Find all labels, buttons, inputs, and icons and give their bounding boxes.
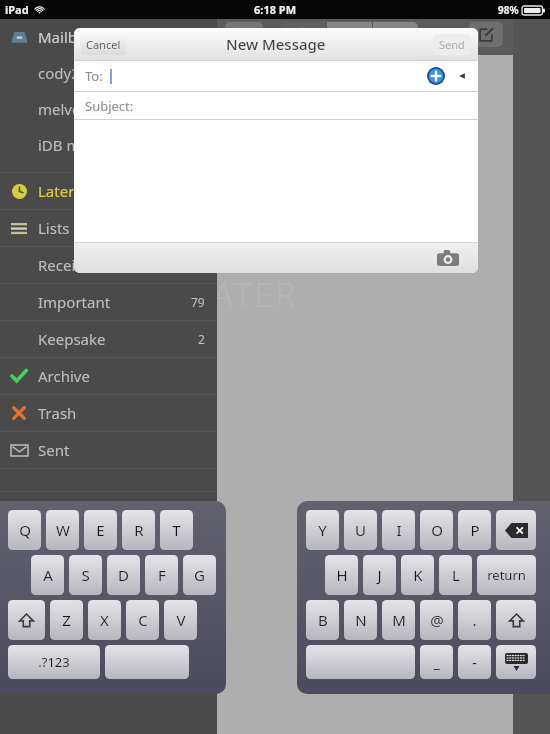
staticText: Sent (38, 440, 70, 460)
button[interactable]: Inbox (327, 22, 372, 47)
button[interactable]: L (439, 555, 472, 595)
staticText: Send (439, 37, 465, 52)
button[interactable]: return (477, 555, 536, 595)
button[interactable]: Q (8, 510, 41, 550)
button[interactable]: Shift (8, 600, 45, 640)
staticText: To: (85, 67, 103, 85)
button[interactable]: Cancel (81, 34, 126, 55)
button[interactable]: V (164, 600, 197, 640)
staticText: V (176, 610, 186, 630)
button[interactable]: F (145, 555, 178, 595)
button[interactable]: D (107, 555, 140, 595)
staticText: Mailbox (38, 27, 94, 47)
button[interactable]: Menu (225, 22, 263, 47)
staticText: _ (433, 653, 440, 672)
staticText: Archive (38, 366, 90, 386)
button[interactable]: A (31, 555, 64, 595)
button[interactable]: Compose (469, 22, 503, 47)
staticText: 2 (198, 331, 205, 347)
staticText: K (413, 565, 423, 585)
button[interactable]: Y (306, 510, 339, 550)
staticText: A (43, 565, 53, 585)
button[interactable]: Space (306, 645, 415, 679)
button[interactable]: .?123 (8, 645, 100, 679)
staticText: Cancel (86, 37, 121, 52)
button[interactable]: _ (420, 645, 453, 679)
staticText: . (472, 610, 477, 630)
button[interactable]: H (325, 555, 358, 595)
staticText: N (355, 610, 367, 630)
staticText: - (472, 653, 477, 672)
staticText: C (138, 610, 148, 630)
button[interactable]: U (344, 510, 377, 550)
button[interactable]: Mailbox (0, 19, 217, 55)
button[interactable]: Z (50, 600, 83, 640)
staticText: W (56, 520, 70, 540)
button[interactable]: Hide keyboard (496, 645, 536, 679)
button[interactable]: - (458, 645, 491, 679)
staticText: J (377, 565, 382, 585)
staticText: Keepsake (38, 329, 106, 349)
button[interactable]: O (420, 510, 453, 550)
button[interactable]: Edit (373, 22, 418, 47)
button[interactable]: P (458, 510, 491, 550)
button[interactable]: @ (420, 600, 453, 640)
button[interactable]: melvo (0, 91, 217, 127)
staticText: O (431, 520, 443, 540)
staticText: Y (318, 520, 327, 540)
staticText: G (194, 565, 205, 585)
button[interactable]: W (46, 510, 79, 550)
button[interactable]: Send (433, 34, 471, 55)
button[interactable]: G (183, 555, 216, 595)
staticText: U (355, 520, 366, 540)
staticText: Z (62, 610, 71, 630)
button[interactable]: S (69, 555, 102, 595)
staticText: 98% (498, 3, 519, 17)
staticText: @ (430, 610, 444, 630)
staticText: Later (38, 181, 75, 201)
staticText: Settings (38, 500, 96, 520)
button[interactable]: Sent (0, 432, 217, 468)
button[interactable]: R (122, 510, 155, 550)
button[interactable]: K (401, 555, 434, 595)
button[interactable]: Trash (0, 395, 217, 431)
button[interactable]: N (344, 600, 377, 640)
button[interactable]: Space (105, 645, 189, 679)
button[interactable]: T (160, 510, 193, 550)
staticText: Lists (38, 218, 70, 238)
button[interactable]: Important (0, 284, 217, 320)
button[interactable]: Lists (0, 210, 217, 246)
button[interactable]: Keepsake (0, 321, 217, 357)
button[interactable]: Add contact (427, 67, 445, 85)
staticText: .?123 (38, 653, 70, 671)
button[interactable]: J (363, 555, 396, 595)
button[interactable]: Backspace (496, 510, 536, 550)
button[interactable]: E (84, 510, 117, 550)
staticText: I (396, 520, 402, 540)
staticText: B (318, 610, 328, 630)
button[interactable]: M (382, 600, 415, 640)
button[interactable]: Archive (0, 358, 217, 394)
button[interactable]: Shift (496, 600, 536, 640)
button[interactable]: I (382, 510, 415, 550)
staticText: S (81, 565, 90, 585)
button[interactable]: cody2 (0, 55, 217, 91)
button[interactable]: . (458, 600, 491, 640)
staticText: L (452, 565, 460, 585)
button[interactable]: iDB m (0, 127, 217, 163)
button[interactable]: C (126, 600, 159, 640)
button[interactable]: Later (0, 173, 217, 209)
staticText: D (118, 565, 129, 585)
staticText: R (134, 520, 144, 540)
button[interactable]: Later (281, 22, 326, 47)
button[interactable]: B (306, 600, 339, 640)
staticText: M (392, 610, 406, 630)
staticText: Q (19, 520, 31, 540)
staticText: cody2 (38, 63, 80, 83)
button[interactable]: X (88, 600, 121, 640)
staticText: Recei (38, 255, 76, 275)
staticText: E (96, 520, 105, 540)
button[interactable]: Settings (0, 492, 217, 528)
button[interactable]: Recei (0, 247, 217, 283)
button[interactable]: Attach photo (437, 250, 459, 266)
